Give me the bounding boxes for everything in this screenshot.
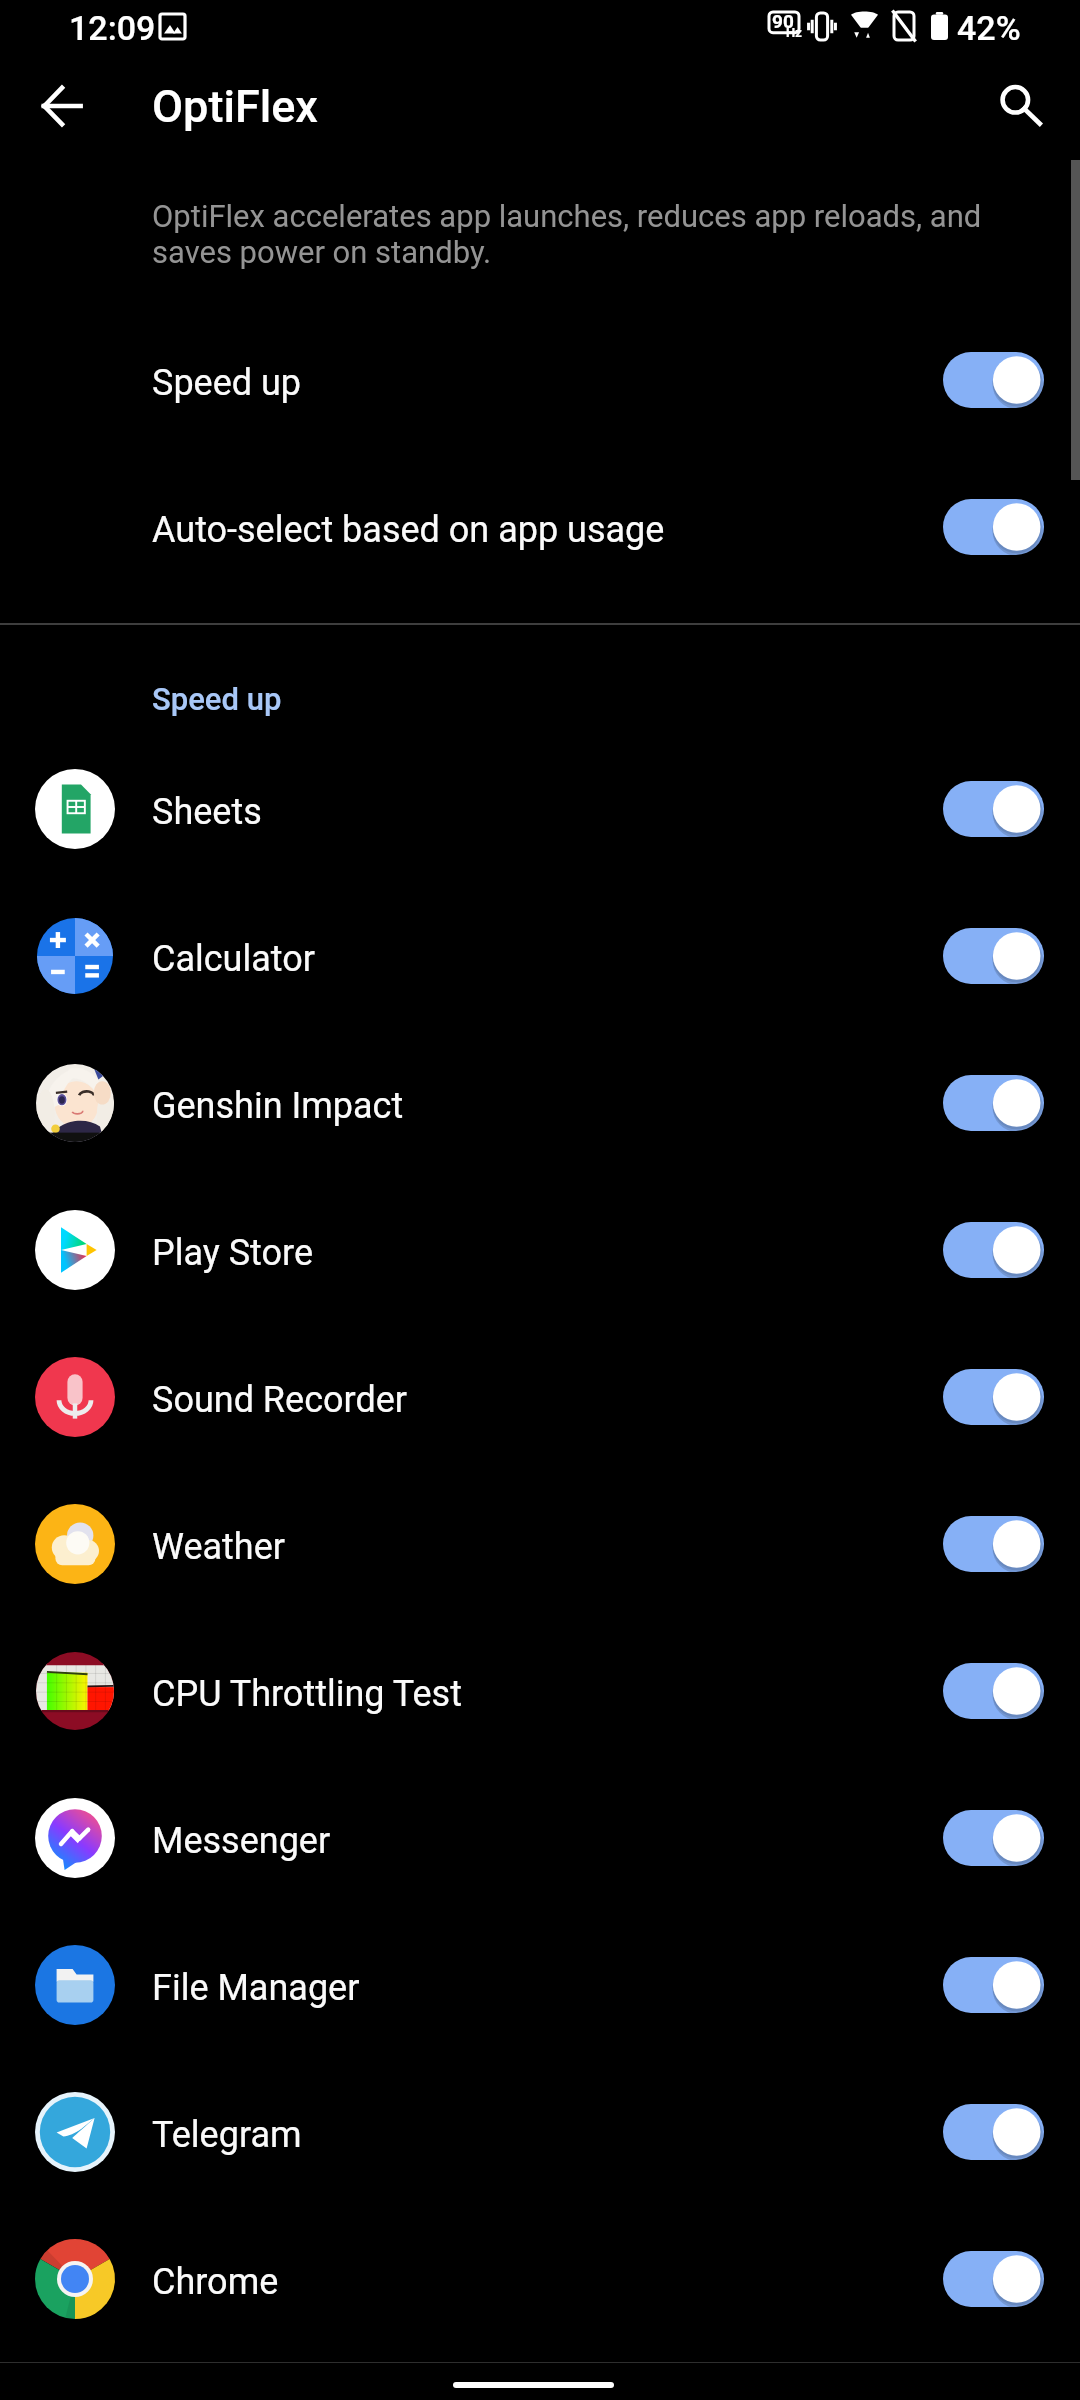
- staticText: CPU Throttling Test: [152, 1673, 462, 1715]
- staticText: Messenger: [152, 1820, 331, 1862]
- button[interactable]: Toggle Calculator: [943, 928, 1044, 984]
- button[interactable]: Toggle Auto-select based on app usage: [943, 499, 1044, 555]
- button[interactable]: Toggle Messenger: [943, 1810, 1044, 1866]
- button[interactable]: Sheets: [0, 735, 1080, 882]
- staticText: Genshin Impact: [152, 1085, 404, 1127]
- staticText: Calculator: [152, 938, 315, 980]
- staticText: Telegram: [152, 2114, 302, 2156]
- button[interactable]: Genshin Impact: [0, 1029, 1080, 1176]
- staticText: OptiFlex accelerates app launches, reduc…: [152, 198, 982, 271]
- button[interactable]: Toggle Chrome: [943, 2251, 1044, 2307]
- button[interactable]: File Manager: [0, 1911, 1080, 2058]
- staticText: OptiFlex: [152, 80, 318, 133]
- button[interactable]: Toggle Genshin Impact: [943, 1075, 1044, 1131]
- button[interactable]: Calculator: [0, 882, 1080, 1029]
- staticText: Hz: [786, 25, 802, 40]
- staticText: Speed up: [152, 681, 282, 717]
- button[interactable]: Search: [978, 64, 1062, 148]
- staticText: File Manager: [152, 1967, 360, 2009]
- button[interactable]: Weather: [0, 1470, 1080, 1617]
- button[interactable]: Toggle CPU Throttling Test: [943, 1663, 1044, 1719]
- staticText: 90: [772, 10, 794, 32]
- button[interactable]: Toggle Speed up: [943, 352, 1044, 408]
- button[interactable]: Back: [20, 64, 104, 148]
- button[interactable]: Telegram: [0, 2058, 1080, 2205]
- staticText: Speed up: [152, 362, 302, 404]
- staticText: Sheets: [152, 791, 262, 833]
- staticText: Chrome: [152, 2261, 279, 2303]
- button[interactable]: Toggle Sheets: [943, 781, 1044, 837]
- button[interactable]: Speed up: [0, 307, 1080, 453]
- staticText: Sound Recorder: [152, 1379, 407, 1421]
- button[interactable]: Toggle Weather: [943, 1516, 1044, 1572]
- button[interactable]: CPU Throttling Test: [0, 1617, 1080, 1764]
- button[interactable]: Chrome: [0, 2205, 1080, 2352]
- button[interactable]: Toggle Play Store: [943, 1222, 1044, 1278]
- staticText: 12:09: [69, 8, 156, 48]
- button[interactable]: Toggle File Manager: [943, 1957, 1044, 2013]
- button[interactable]: Auto-select based on app usage: [0, 454, 1080, 600]
- staticText: Play Store: [152, 1232, 314, 1274]
- staticText: 42%: [957, 8, 1021, 48]
- button[interactable]: Play Store: [0, 1176, 1080, 1323]
- button[interactable]: Toggle Sound Recorder: [943, 1369, 1044, 1425]
- staticText: Weather: [152, 1526, 285, 1568]
- button[interactable]: Toggle Telegram: [943, 2104, 1044, 2160]
- button[interactable]: Messenger: [0, 1764, 1080, 1911]
- staticText: Auto-select based on app usage: [152, 509, 665, 551]
- button[interactable]: Sound Recorder: [0, 1323, 1080, 1470]
